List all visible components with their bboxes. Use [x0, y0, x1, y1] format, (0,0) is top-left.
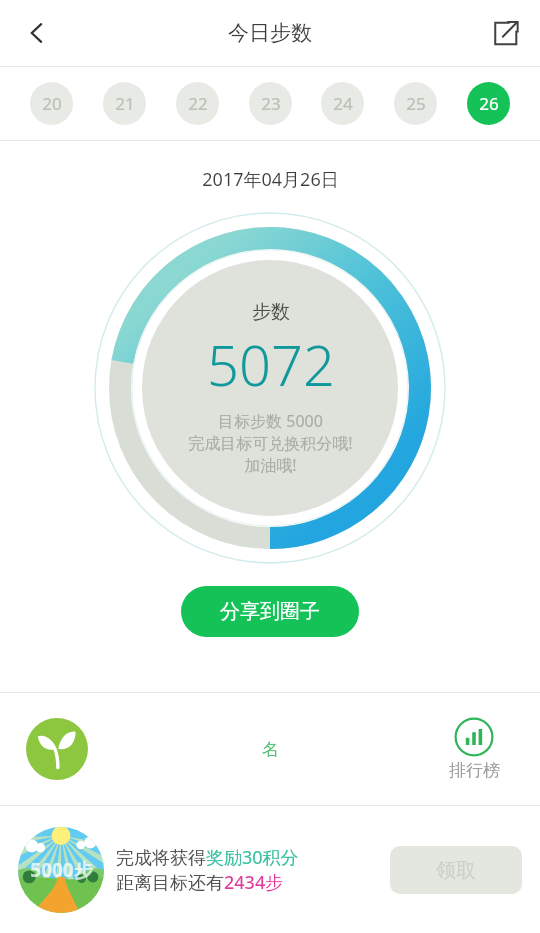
staticText: 完成将获得奖励30积分	[116, 845, 299, 870]
button[interactable]: Back	[0, 0, 74, 66]
button[interactable]: 25	[394, 82, 437, 125]
button[interactable]: 21	[103, 82, 146, 125]
staticText: 23	[261, 92, 281, 115]
staticText: 领取	[436, 858, 476, 883]
button[interactable]: 领取	[390, 846, 522, 894]
button[interactable]: 20	[30, 82, 73, 125]
staticText: 分享到圈子	[220, 599, 320, 624]
staticText: 2017年04月26日	[202, 167, 339, 192]
button[interactable]: 分享到圈子	[181, 586, 359, 637]
staticText: 22	[188, 92, 208, 115]
button[interactable]: 26	[467, 82, 510, 125]
button[interactable]: Share	[470, 0, 540, 66]
staticText: 完成目标可兑换积分哦!	[188, 432, 353, 454]
button[interactable]: Sprout	[26, 718, 88, 780]
staticText: 21	[115, 92, 135, 115]
button[interactable]: 23	[249, 82, 292, 125]
staticText: 5000步	[30, 857, 93, 883]
staticText: 距离目标还有2434步	[116, 870, 284, 895]
staticText: 24	[333, 92, 353, 115]
button[interactable]: 24	[321, 82, 364, 125]
staticText: 25	[406, 92, 426, 115]
button[interactable]: 排行榜	[434, 717, 514, 781]
staticText: 排行榜	[449, 760, 500, 781]
button[interactable]: 22	[176, 82, 219, 125]
staticText: 20	[42, 92, 62, 115]
staticText: 步数	[252, 300, 290, 324]
staticText: 5072	[207, 326, 335, 402]
staticText: 名	[262, 739, 279, 760]
staticText: 加油哦!	[244, 454, 297, 476]
button[interactable]: 名	[230, 714, 310, 784]
staticText: 目标步数 5000	[218, 410, 323, 432]
staticText: 今日步数	[228, 20, 312, 46]
staticText: 26	[479, 92, 499, 115]
